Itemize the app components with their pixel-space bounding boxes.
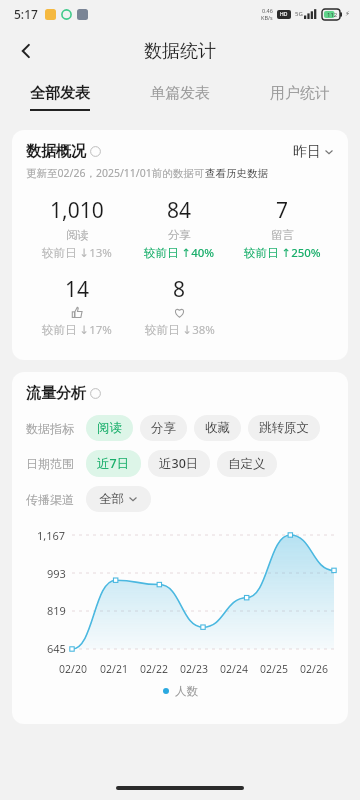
button[interactable]: 跳转原文 — [248, 415, 320, 441]
staticText: 14 — [65, 275, 90, 304]
staticText: 用户统计 — [270, 84, 330, 103]
button[interactable]: 自定义 — [217, 451, 277, 477]
staticText: 0.46 — [262, 7, 273, 14]
staticText: 近30日 — [159, 455, 199, 472]
staticText: 84 — [167, 196, 192, 225]
button[interactable]: 用户统计 — [240, 74, 360, 120]
staticText: 112 — [327, 11, 338, 19]
staticText: 更新至02/26，2025/11/01前的数据可 — [26, 166, 205, 180]
staticText: 645 — [47, 641, 66, 656]
staticText: 跳转原文 — [259, 420, 309, 436]
staticText: 单篇发表 — [150, 84, 210, 103]
staticText: 收藏 — [205, 420, 230, 436]
staticText: 1,167 — [37, 528, 66, 543]
button[interactable]: 全部发表 — [0, 74, 120, 120]
staticText: 流量分析 — [26, 384, 86, 403]
staticText: 全部发表 — [30, 84, 90, 103]
staticText: 02/26 — [300, 662, 328, 676]
button[interactable]: 7 — [231, 196, 334, 261]
staticText: 02/20 — [59, 662, 87, 676]
staticText: 阅读 — [97, 420, 122, 436]
staticText: ⚡ — [345, 10, 350, 18]
button[interactable]: 84 — [128, 196, 231, 261]
staticText: 较前日 ↑250% — [244, 245, 321, 261]
staticText: 分享 — [168, 228, 191, 242]
button[interactable]: 查看历史数据 — [205, 167, 268, 180]
staticText: 7 — [276, 196, 289, 225]
staticText: 较前日 ↓17% — [42, 322, 112, 338]
button[interactable]: 8 — [128, 275, 231, 338]
staticText: 较前日 ↓13% — [42, 245, 112, 261]
staticText: 数据统计 — [144, 40, 216, 63]
staticText: 8 — [173, 275, 186, 304]
staticText: 传播渠道 — [26, 492, 74, 507]
staticText: 较前日 ↑40% — [144, 245, 215, 261]
button[interactable]: 14 — [26, 275, 128, 338]
button[interactable]: 近30日 — [148, 450, 210, 477]
staticText: 1,010 — [50, 196, 104, 225]
staticText: 5G — [295, 10, 303, 18]
staticText: 人数 — [175, 684, 198, 698]
button[interactable]: 阅读 — [86, 415, 133, 441]
staticText: 日期范围 — [26, 456, 74, 471]
staticText: 02/25 — [260, 662, 288, 676]
staticText: HD — [280, 11, 288, 18]
button[interactable]: 收藏 — [194, 415, 241, 441]
staticText: 较前日 ↓38% — [145, 322, 215, 338]
staticText: 数据概况 — [26, 142, 86, 161]
button[interactable]: 昨日 — [293, 143, 334, 161]
staticText: 02/22 — [140, 662, 168, 676]
staticText: 5:17 — [14, 6, 38, 22]
staticText: KB/s — [261, 14, 273, 21]
button[interactable]: 单篇发表 — [120, 74, 240, 120]
staticText: 近7日 — [97, 455, 130, 472]
staticText: 全部 — [99, 491, 124, 507]
staticText: 自定义 — [228, 456, 266, 472]
staticText: 阅读 — [66, 228, 89, 242]
staticText: 993 — [47, 566, 66, 581]
button[interactable]: 分享 — [140, 415, 187, 441]
staticText: 02/21 — [100, 662, 128, 676]
button[interactable]: Back — [6, 31, 46, 71]
staticText: 留言 — [271, 228, 294, 242]
staticText: 数据指标 — [26, 421, 74, 436]
staticText: 02/23 — [180, 662, 208, 676]
button[interactable]: 近7日 — [86, 450, 141, 477]
staticText: 昨日 — [293, 143, 321, 161]
button[interactable]: 全部 — [86, 486, 151, 512]
staticText: 分享 — [151, 420, 176, 436]
button[interactable]: 1,010 — [26, 196, 128, 261]
staticText: 02/24 — [220, 662, 248, 676]
staticText: 819 — [47, 603, 66, 618]
